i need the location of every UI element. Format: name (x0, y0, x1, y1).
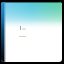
button[interactable]: Navigation (1, 2, 6, 62)
